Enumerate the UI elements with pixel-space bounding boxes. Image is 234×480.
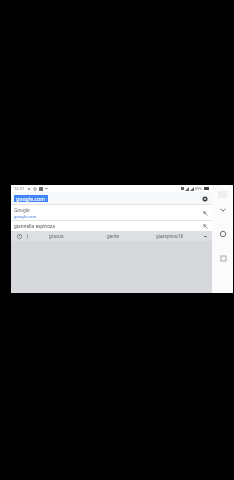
button[interactable]: Settings: [200, 194, 209, 203]
staticText: 12:31: [14, 186, 25, 191]
staticText: giaespinoz18: [156, 233, 184, 239]
button[interactable]: Voice input: [11, 231, 27, 241]
button[interactable]: Google: [11, 205, 212, 220]
button[interactable]: giannella espinoza: [11, 221, 212, 231]
staticText: 89%: [195, 186, 203, 191]
staticText: gracias: [49, 233, 64, 239]
button[interactable]: Collapse: [218, 205, 228, 215]
button[interactable]: Recents: [218, 253, 228, 263]
staticText: gente: [107, 233, 119, 239]
staticText: Google: [14, 207, 30, 213]
button[interactable]: giaespinoz18: [141, 231, 198, 241]
staticText: giannella espinoza: [14, 223, 201, 229]
staticText: google.com: [16, 195, 46, 202]
button[interactable]: google.com: [16, 195, 46, 202]
staticText: google.com: [14, 214, 37, 219]
button[interactable]: Insert suggestion: [201, 222, 209, 230]
button[interactable]: gracias: [28, 231, 84, 241]
button[interactable]: gente: [84, 231, 141, 241]
button[interactable]: Insert suggestion: [201, 209, 209, 217]
button[interactable]: More suggestions: [198, 231, 212, 241]
button[interactable]: Home: [218, 229, 228, 239]
